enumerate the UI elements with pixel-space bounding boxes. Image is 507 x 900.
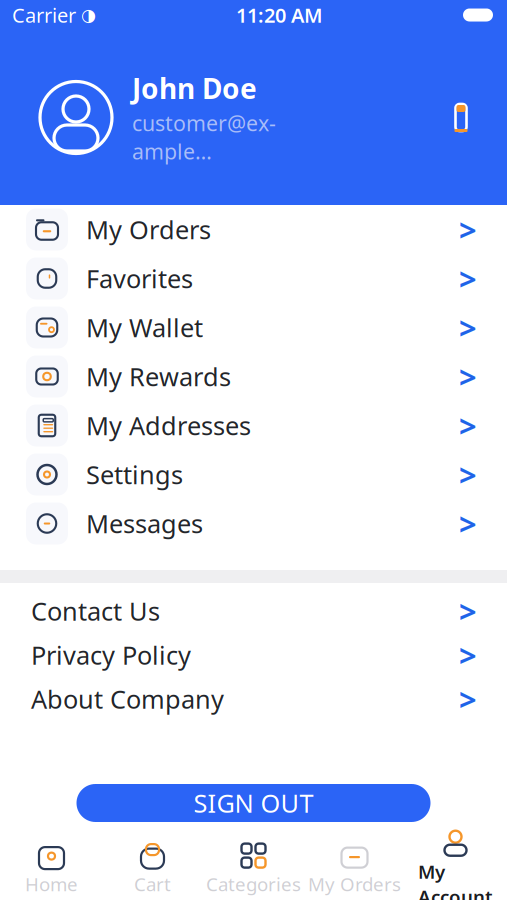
staticText: Cart (134, 872, 171, 896)
staticText: My Wallet (86, 311, 203, 344)
staticText: About Company (31, 682, 224, 716)
button[interactable]: Messages (0, 499, 507, 548)
staticText: Carrier (12, 2, 76, 28)
staticText: Home (25, 872, 78, 896)
staticText: > (459, 356, 477, 397)
staticText: ◑ (81, 5, 96, 25)
button[interactable]: Cart (102, 840, 203, 898)
staticText: > (459, 591, 477, 631)
button[interactable]: Settings (0, 450, 507, 499)
button[interactable]: Edit profile (439, 95, 483, 139)
staticText: My Addresses (86, 409, 251, 442)
button[interactable]: My Orders (0, 205, 507, 254)
staticText: My Account (418, 859, 493, 900)
button[interactable]: Favorites (0, 254, 507, 303)
button[interactable]: My Addresses (0, 401, 507, 450)
staticText: 11:20 AM (236, 2, 323, 28)
button[interactable]: My Rewards (0, 352, 507, 401)
button[interactable]: Contact Us (0, 589, 507, 633)
button[interactable]: My Orders (304, 840, 405, 898)
staticText: Categories (206, 872, 301, 896)
staticText: > (459, 209, 477, 250)
staticText: Privacy Policy (31, 638, 191, 672)
button[interactable]: Categories (203, 840, 304, 898)
staticText: > (459, 503, 477, 544)
staticText: SIGN OUT (193, 786, 313, 820)
staticText: My Rewards (86, 360, 231, 393)
button[interactable]: My Wallet (0, 303, 507, 352)
button[interactable]: SIGN OUT (76, 784, 430, 822)
staticText: My Orders (86, 213, 211, 246)
staticText: > (459, 635, 477, 675)
button[interactable]: My Account (405, 840, 506, 898)
button[interactable]: Home (1, 840, 102, 898)
staticText: > (459, 679, 477, 719)
staticText: John Doe (132, 70, 257, 107)
staticText: > (459, 258, 477, 299)
staticText: > (459, 307, 477, 348)
staticText: Messages (86, 507, 203, 540)
button[interactable]: About Company (0, 677, 507, 721)
staticText: customer@example… (132, 109, 276, 165)
staticText: Favorites (86, 262, 193, 295)
staticText: Contact Us (31, 594, 160, 628)
staticText: > (459, 405, 477, 446)
staticText: Settings (86, 458, 183, 491)
staticText: My Orders (308, 872, 401, 896)
button[interactable]: Privacy Policy (0, 633, 507, 677)
staticText: > (459, 454, 477, 495)
